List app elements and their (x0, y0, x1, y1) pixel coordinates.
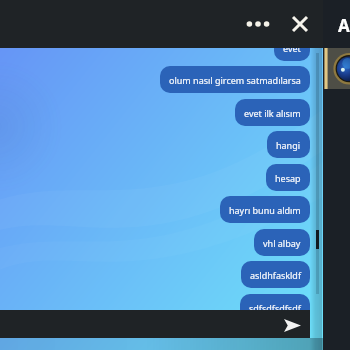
button[interactable]: Send (281, 313, 303, 335)
button[interactable]: hayrı bunu aldım (220, 196, 310, 223)
button[interactable]: Profile (323, 48, 350, 89)
staticText: evet ilk alısım (244, 107, 301, 119)
staticText: hayrı bunu aldım (229, 204, 301, 216)
button[interactable]: More options (241, 7, 275, 41)
staticText: vhl albay (263, 237, 301, 249)
staticText: asldhfaskldf (250, 269, 301, 281)
button[interactable]: Close (283, 7, 317, 41)
staticText: evet (283, 42, 301, 54)
staticText: hangi (276, 139, 301, 151)
button[interactable]: evet ilk alısım (235, 99, 310, 126)
button[interactable]: olum nasıl gircem satmadılarsa (160, 66, 310, 93)
staticText: olum nasıl gircem satmadılarsa (169, 74, 301, 86)
staticText: hesap (275, 172, 301, 184)
button[interactable]: vhl albay (254, 229, 310, 256)
button[interactable]: evet (274, 34, 310, 61)
button[interactable]: sdfsdfsdfsdf (240, 294, 310, 321)
button[interactable]: hesap (266, 164, 310, 191)
staticText: A (338, 14, 350, 37)
button[interactable]: hangi (267, 131, 310, 158)
button[interactable]: asldhfaskldf (241, 261, 310, 288)
staticText: sdfsdfsdfsdf (249, 302, 301, 314)
